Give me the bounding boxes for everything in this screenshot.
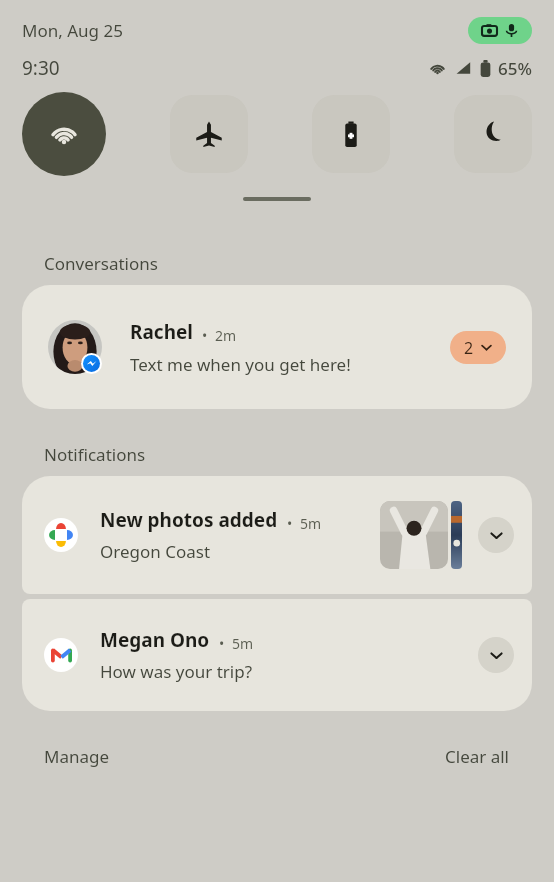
button[interactable]: Battery saver: [312, 95, 390, 173]
staticText: Oregon Coast: [100, 540, 211, 563]
staticText: Megan Ono: [100, 627, 210, 653]
staticText: 2m: [215, 326, 237, 345]
button[interactable]: Megan Ono: [22, 599, 532, 711]
staticText: New photos added: [100, 507, 278, 533]
staticText: Manage: [44, 745, 110, 768]
button[interactable]: Do not disturb: [454, 95, 532, 173]
button[interactable]: Clear all: [423, 737, 532, 776]
button[interactable]: Internet: [22, 92, 106, 176]
staticText: Mon, Aug 25: [22, 19, 123, 42]
button[interactable]: New photos added: [22, 476, 532, 594]
staticText: Notifications: [44, 443, 146, 466]
button[interactable]: Expand, 2 messages: [450, 331, 506, 364]
staticText: 9:30: [22, 55, 60, 81]
staticText: Text me when you get here!: [130, 353, 351, 376]
staticText: •: [219, 634, 225, 653]
staticText: 2: [464, 337, 474, 359]
staticText: 65%: [498, 57, 532, 80]
staticText: 5m: [300, 514, 322, 533]
staticText: 5m: [232, 634, 254, 653]
button[interactable]: Manage: [22, 737, 132, 776]
staticText: How was your trip?: [100, 660, 253, 683]
staticText: Rachel: [130, 319, 194, 345]
staticText: Clear all: [445, 745, 510, 768]
staticText: •: [287, 514, 293, 533]
button[interactable]: Expand quick settings: [243, 197, 311, 201]
button[interactable]: Rachel: [22, 285, 532, 409]
staticText: •: [202, 326, 208, 345]
staticText: Conversations: [44, 252, 158, 275]
button[interactable]: Camera and microphone in use: [468, 17, 532, 44]
button[interactable]: Airplane mode: [170, 95, 248, 173]
button[interactable]: Expand notification: [478, 637, 514, 673]
button[interactable]: Expand notification: [478, 517, 514, 553]
